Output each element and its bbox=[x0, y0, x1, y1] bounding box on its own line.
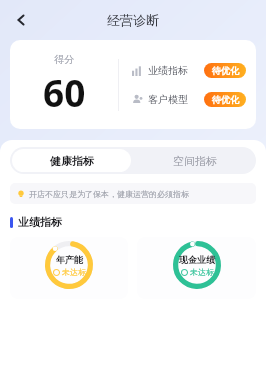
staticText: 得分 bbox=[54, 53, 74, 66]
button[interactable]: 健康指标 bbox=[12, 149, 131, 172]
staticText: 开店不应只是为了保本，健康运营的必须指标 bbox=[29, 189, 189, 199]
button[interactable]: 业绩指标 bbox=[132, 63, 246, 78]
button[interactable]: Back bbox=[8, 7, 34, 33]
staticText: 待优化 bbox=[212, 94, 239, 105]
button[interactable]: 得分 bbox=[10, 40, 256, 129]
staticText: 客户模型 bbox=[148, 93, 188, 106]
staticText: 60 bbox=[43, 67, 86, 117]
staticText: 业绩指标 bbox=[148, 64, 188, 77]
staticText: 未达标 bbox=[190, 267, 214, 277]
button[interactable]: 现金业绩 bbox=[137, 237, 256, 299]
staticText: 经营诊断 bbox=[107, 12, 159, 28]
staticText: 业绩指标 bbox=[18, 215, 62, 229]
button[interactable]: 空间指标 bbox=[133, 147, 256, 174]
staticText: 健康指标 bbox=[50, 154, 94, 168]
staticText: 未达标 bbox=[62, 267, 86, 277]
staticText: 空间指标 bbox=[173, 154, 217, 168]
staticText: 年产能 bbox=[56, 254, 83, 265]
staticText: 待优化 bbox=[212, 65, 239, 76]
button[interactable]: 客户模型 bbox=[132, 92, 246, 107]
button[interactable]: 年产能 bbox=[10, 237, 128, 299]
staticText: 现金业绩 bbox=[179, 254, 215, 265]
